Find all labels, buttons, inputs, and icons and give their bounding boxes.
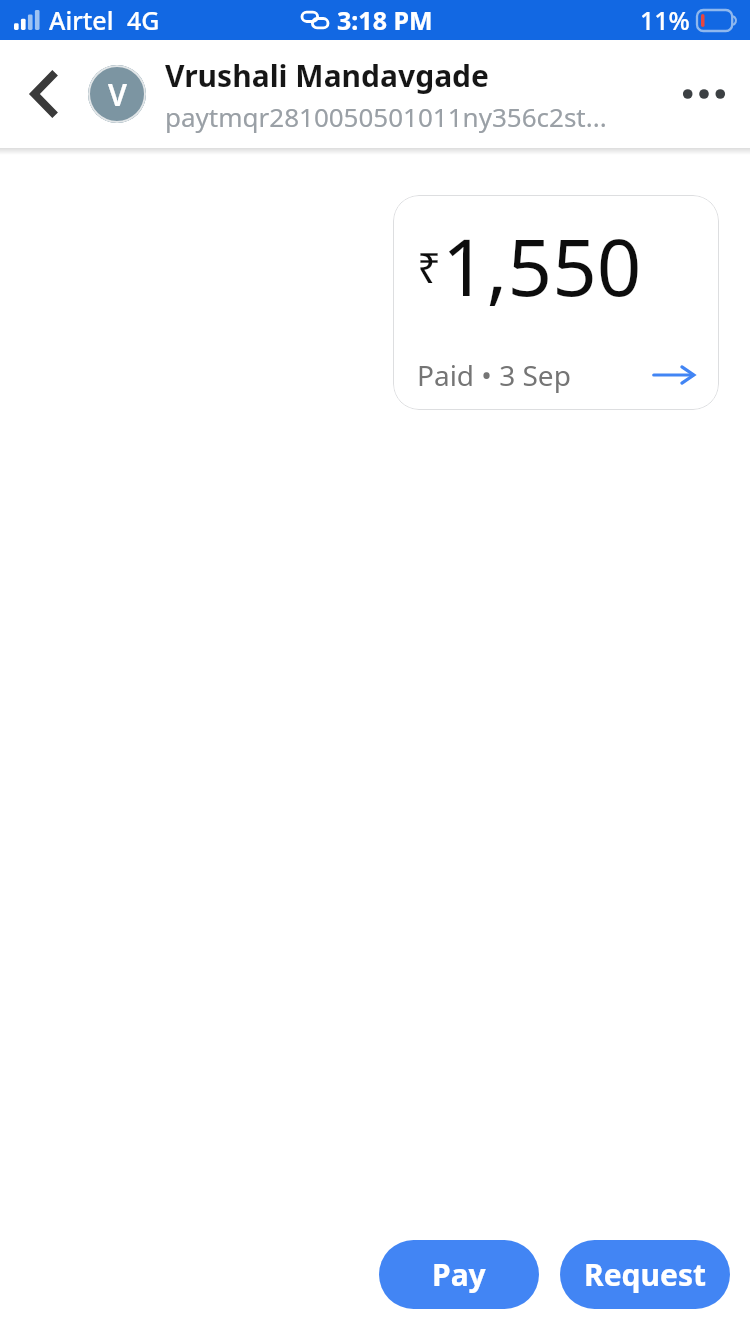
staticText: 1,550 [442, 213, 642, 319]
staticText: Airtel [49, 3, 114, 37]
button[interactable]: View transaction details [651, 358, 697, 392]
button[interactable]: Pay [379, 1240, 539, 1309]
staticText: V [108, 74, 127, 115]
staticText: paytmqr2810050501011ny356c2st... [165, 99, 607, 134]
staticText: 11% [640, 3, 690, 37]
staticText: Vrushali Mandavgade [165, 55, 489, 96]
staticText: Request [584, 1254, 707, 1295]
button[interactable]: Request [560, 1240, 730, 1309]
button[interactable]: Back [0, 40, 88, 148]
button[interactable]: ₹ [393, 195, 719, 410]
button[interactable]: More options [658, 40, 750, 148]
staticText: 4G [127, 3, 160, 37]
staticText: Paid • 3 Sep [417, 356, 571, 394]
staticText: Pay [432, 1254, 486, 1295]
staticText: 3:18 PM [337, 3, 433, 37]
staticText: ₹ [417, 238, 442, 295]
